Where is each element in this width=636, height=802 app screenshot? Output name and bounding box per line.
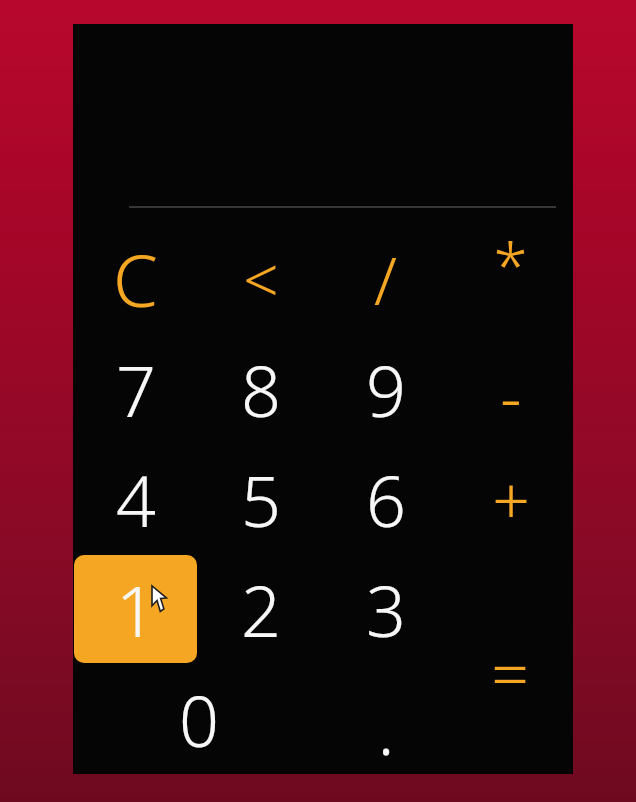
staticText: 2	[241, 562, 281, 657]
staticText: =	[491, 627, 529, 687]
staticText: <	[243, 237, 279, 321]
button[interactable]: 8	[199, 335, 322, 443]
button[interactable]: Backspace	[199, 225, 322, 333]
staticText: 6	[366, 452, 406, 547]
staticText: 8	[241, 342, 281, 437]
button[interactable]: 6	[324, 445, 447, 553]
button[interactable]: 5	[199, 445, 322, 553]
staticText: 5	[241, 452, 281, 547]
button[interactable]: Multiply	[449, 211, 572, 319]
button[interactable]: 0	[137, 665, 260, 773]
button[interactable]: =	[449, 555, 571, 771]
button[interactable]: 4	[74, 445, 197, 553]
button[interactable]: 1	[74, 555, 197, 663]
button[interactable]: Minus	[449, 341, 572, 449]
staticText: *	[493, 223, 528, 307]
button[interactable]: Decimal point	[324, 673, 447, 781]
staticText: 7	[116, 342, 156, 437]
button[interactable]: 7	[74, 335, 197, 443]
staticText: 1	[116, 562, 156, 657]
button[interactable]: 9	[324, 335, 447, 443]
staticText: 3	[366, 562, 406, 657]
staticText: /	[374, 234, 397, 324]
staticText: 9	[366, 342, 406, 437]
staticText: .	[377, 680, 395, 775]
staticText: +	[492, 454, 530, 544]
button[interactable]: 2	[199, 555, 322, 663]
button[interactable]: Clear	[74, 225, 197, 333]
staticText: C	[113, 230, 158, 328]
button[interactable]: Divide	[324, 225, 447, 333]
button[interactable]: 3	[324, 555, 447, 663]
staticText: 0	[179, 672, 219, 767]
button[interactable]: Plus	[449, 445, 572, 553]
staticText: -	[500, 350, 522, 440]
staticText: 4	[116, 452, 156, 547]
